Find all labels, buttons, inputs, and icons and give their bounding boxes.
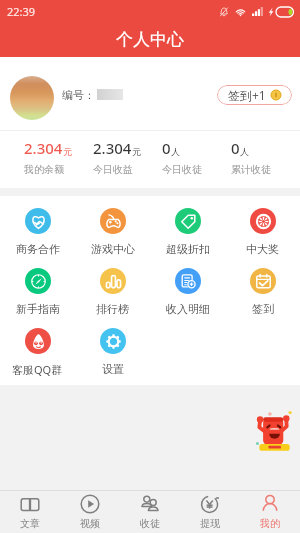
button[interactable]: 游戏中心 [75, 196, 150, 256]
staticText: 元 [63, 146, 72, 157]
staticText: 今日收徒 [162, 163, 202, 176]
button[interactable]: Avatar [10, 76, 54, 120]
staticText: 视频 [80, 517, 100, 530]
button[interactable]: 超级折扣 [150, 196, 225, 256]
staticText: 2.304 [93, 138, 132, 158]
staticText: 元 [132, 146, 141, 157]
staticText: 今日收益 [93, 163, 133, 176]
button[interactable]: 2.304 [93, 131, 162, 188]
button[interactable]: 提现 [180, 491, 240, 533]
staticText: 个人中心 [116, 29, 184, 50]
button[interactable]: 我的 [240, 491, 300, 533]
button[interactable]: 排行榜 [75, 256, 150, 316]
staticText: 商务合作 [16, 242, 60, 256]
button[interactable]: 新手指南 [0, 256, 75, 316]
button[interactable]: 客服QQ群 [0, 316, 75, 376]
staticText: 收徒 [140, 517, 160, 530]
button[interactable]: 0 [162, 131, 231, 188]
staticText: 0 [231, 138, 240, 158]
button[interactable]: 签到+1 [217, 85, 292, 105]
staticText: 文章 [20, 517, 40, 530]
staticText: 游戏中心 [91, 242, 135, 256]
button[interactable]: 视频 [60, 491, 120, 533]
staticText: 排行榜 [96, 302, 129, 316]
staticText: 签到+1 [228, 87, 266, 103]
staticText: 提现 [200, 517, 220, 530]
staticText: 人 [171, 146, 180, 157]
staticText: 收入明细 [166, 302, 210, 316]
button[interactable]: 签到 [225, 256, 300, 316]
staticText: 超级折扣 [166, 242, 210, 256]
staticText: 0 [162, 138, 171, 158]
button[interactable]: 收入明细 [150, 256, 225, 316]
staticText: 新手指南 [16, 302, 60, 316]
staticText: 人 [240, 146, 249, 157]
staticText: 中大奖 [246, 242, 279, 256]
button[interactable]: 0 [231, 131, 300, 188]
staticText: 客服QQ群 [12, 362, 63, 376]
staticText: 我的余额 [24, 163, 64, 176]
staticText: 2.304 [24, 138, 63, 158]
staticText: 签到 [252, 302, 274, 316]
button[interactable]: 设置 [75, 316, 150, 376]
staticText: 22:39 [7, 4, 36, 19]
button[interactable]: 中大奖 [225, 196, 300, 256]
button[interactable]: 文章 [0, 491, 60, 533]
button[interactable]: 2.304 [24, 131, 93, 188]
staticText: 累计收徒 [231, 163, 271, 176]
staticText: 设置 [102, 362, 124, 376]
button[interactable]: 收徒 [120, 491, 180, 533]
staticText: 我的 [260, 517, 280, 530]
button[interactable]: 商务合作 [0, 196, 75, 256]
staticText: 编号： [62, 88, 95, 102]
